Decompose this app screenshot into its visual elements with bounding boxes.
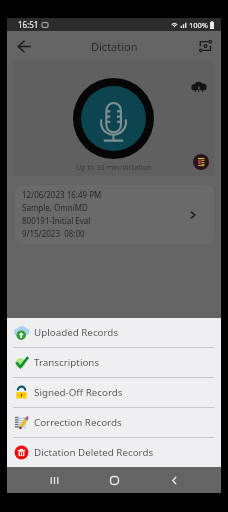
- staticText: 16:51: [18, 19, 39, 30]
- button[interactable]: 12/06/2023 16:49 PM: [15, 185, 214, 244]
- button[interactable]: Dictation Deleted Records: [7, 438, 221, 467]
- button[interactable]: Uploaded Records: [7, 318, 221, 347]
- staticText: Uploaded Records: [34, 326, 119, 339]
- staticText: 9/15/2023 08:00: [22, 228, 85, 241]
- staticText: 800191-Initial Eval: [22, 215, 91, 228]
- staticText: Transcriptions: [34, 356, 100, 369]
- button[interactable]: Home: [101, 467, 127, 493]
- button[interactable]: Back: [11, 33, 37, 59]
- staticText: Dictation Deleted Records: [34, 446, 154, 459]
- button[interactable]: Transfer records: [192, 33, 218, 59]
- staticText: Signed-Off Records: [34, 386, 123, 399]
- button[interactable]: Recent apps: [41, 467, 67, 493]
- staticText: 100%: [189, 20, 209, 30]
- button[interactable]: Correction Records: [7, 408, 221, 437]
- button[interactable]: Record dictation: [81, 86, 146, 151]
- button[interactable]: Signed-Off Records: [7, 378, 221, 407]
- staticText: Dictation: [91, 39, 138, 54]
- staticText: 12/06/2023 16:49 PM: [22, 189, 102, 202]
- staticText: Sample, OmniMD: [22, 202, 88, 215]
- button[interactable]: Back: [161, 467, 187, 493]
- button[interactable]: Upload to cloud: [190, 76, 208, 94]
- staticText: Up to 30 min/dictation: [76, 162, 152, 172]
- button[interactable]: Transcriptions: [7, 348, 221, 377]
- staticText: Correction Records: [34, 416, 122, 429]
- button[interactable]: Templates: [192, 153, 210, 171]
